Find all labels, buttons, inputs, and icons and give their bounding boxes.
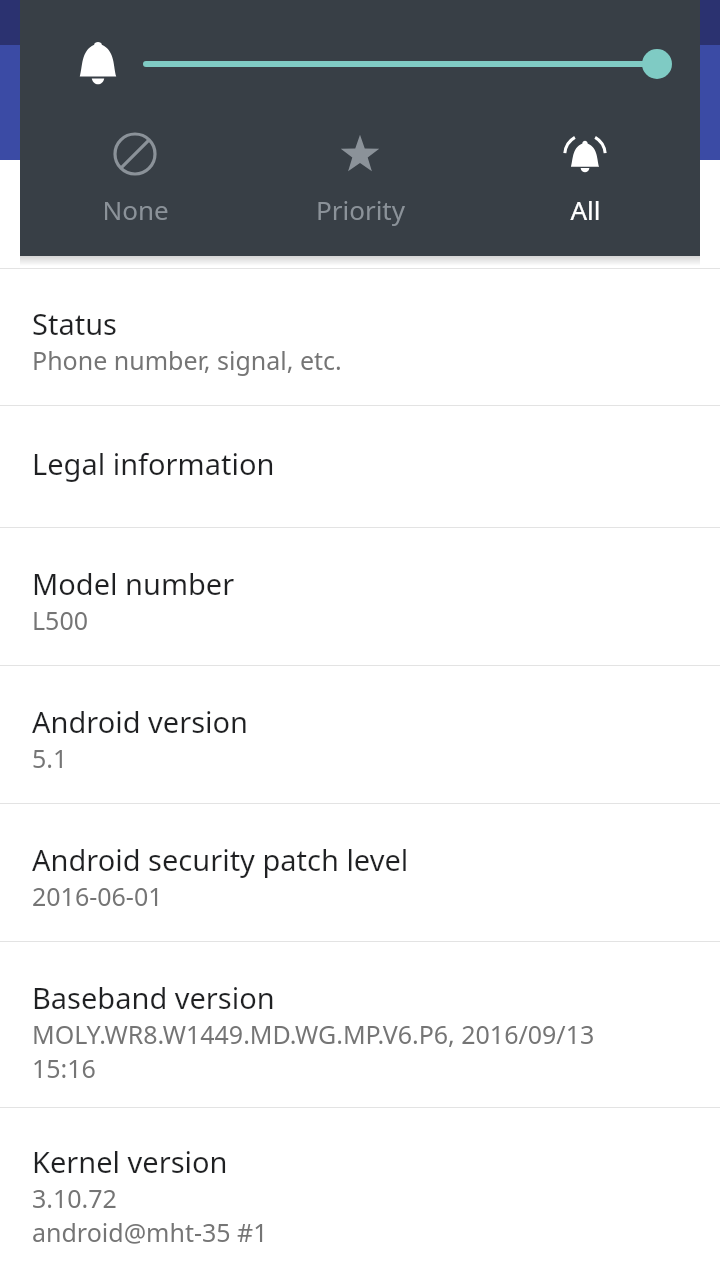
button[interactable]: Kernel version bbox=[0, 1108, 720, 1269]
button[interactable]: Android security patch level bbox=[0, 804, 720, 941]
staticText: 2016-06-01 bbox=[32, 879, 163, 913]
staticText: Legal information bbox=[32, 444, 275, 483]
staticText: Android security patch level bbox=[32, 840, 409, 879]
staticText: Priority bbox=[316, 192, 405, 227]
staticText: L500 bbox=[32, 603, 89, 637]
button[interactable]: None bbox=[25, 124, 245, 235]
button[interactable]: Priority bbox=[250, 124, 470, 235]
staticText: android@mht-35 #1 bbox=[32, 1215, 268, 1249]
button[interactable]: Ring volume bbox=[74, 41, 122, 89]
button[interactable]: Model number bbox=[0, 528, 720, 665]
staticText: Baseband version bbox=[32, 978, 275, 1017]
staticText: Status bbox=[32, 304, 117, 343]
staticText: All bbox=[570, 192, 601, 227]
staticText: 3.10.72 bbox=[32, 1181, 117, 1215]
button[interactable]: Android version bbox=[0, 666, 720, 803]
button[interactable]: Legal information bbox=[0, 406, 720, 527]
button[interactable]: Volume slider bbox=[123, 40, 683, 88]
staticText: Kernel version bbox=[32, 1142, 228, 1181]
button[interactable]: Baseband version bbox=[0, 942, 720, 1107]
staticText: 15:16 bbox=[32, 1051, 96, 1085]
button[interactable]: Status bbox=[0, 268, 720, 405]
staticText: None bbox=[102, 192, 169, 227]
button[interactable]: All bbox=[475, 124, 695, 235]
staticText: 5.1 bbox=[32, 741, 68, 775]
staticText: MOLY.WR8.W1449.MD.WG.MP.V6.P6, 2016/09/1… bbox=[32, 1017, 595, 1051]
staticText: Android version bbox=[32, 702, 248, 741]
staticText: Model number bbox=[32, 564, 235, 603]
staticText: Phone number, signal, etc. bbox=[32, 343, 342, 377]
